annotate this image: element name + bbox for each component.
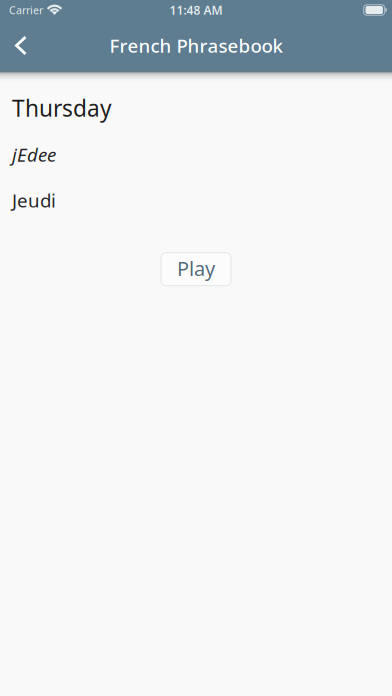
staticText: 11:48 AM xyxy=(169,2,222,18)
button[interactable]: Play xyxy=(161,253,231,286)
staticText: Jeudi xyxy=(12,188,56,213)
staticText: Carrier xyxy=(9,3,43,17)
staticText: Play xyxy=(177,255,215,281)
button[interactable]: Back xyxy=(0,23,41,67)
staticText: French Phrasebook xyxy=(109,33,282,58)
staticText: jEdee xyxy=(12,142,56,167)
staticText: Thursday xyxy=(12,93,112,123)
